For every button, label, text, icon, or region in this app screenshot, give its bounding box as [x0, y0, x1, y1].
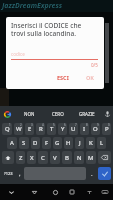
button[interactable]: N	[74, 151, 84, 164]
button[interactable]: OK	[83, 72, 98, 83]
button[interactable]: Recent apps	[65, 184, 79, 200]
button[interactable]: R	[36, 123, 45, 135]
staticText: F	[45, 139, 49, 147]
button[interactable]: Home	[48, 184, 62, 200]
button[interactable]: V	[50, 151, 60, 164]
staticText: V	[53, 154, 57, 162]
button[interactable]: Enter	[98, 167, 111, 180]
staticText: O	[93, 125, 98, 133]
button[interactable]: Comma	[17, 167, 22, 180]
button[interactable]: B	[62, 151, 72, 164]
staticText: I	[83, 125, 86, 133]
button[interactable]: Hide keyboard	[4, 184, 18, 200]
staticText: GRAZIE	[79, 111, 95, 117]
button[interactable]: D	[31, 137, 40, 149]
button[interactable]: Y	[58, 123, 67, 135]
staticText: 6	[64, 123, 66, 127]
button[interactable]: P	[102, 123, 111, 135]
staticText: Inserisci il CODICE che trovi sulla loca…	[11, 21, 82, 38]
button[interactable]: W	[14, 123, 23, 135]
staticText: ESCI	[57, 74, 69, 81]
button[interactable]: Z	[16, 151, 25, 164]
button[interactable]: L	[97, 137, 106, 149]
staticText: 3	[31, 123, 33, 127]
button[interactable]: Google	[0, 106, 15, 122]
staticText: L	[100, 139, 104, 147]
staticText: 4	[42, 123, 44, 127]
button[interactable]: CERO	[43, 106, 72, 122]
staticText: CERO	[52, 111, 64, 117]
staticText: R	[39, 125, 43, 133]
staticText: E	[28, 125, 32, 133]
staticText: G	[55, 139, 60, 147]
button[interactable]: U	[69, 123, 78, 135]
staticText: 7	[75, 123, 77, 127]
staticText: Y	[61, 125, 65, 133]
button[interactable]: Voice input	[101, 106, 113, 122]
staticText: K	[89, 139, 93, 147]
staticText: B	[65, 154, 69, 162]
button[interactable]: ESCI	[54, 72, 72, 83]
staticText: J	[79, 139, 81, 147]
button[interactable]: E	[25, 123, 34, 135]
button[interactable]: NON	[15, 106, 43, 122]
button[interactable]: Back	[27, 184, 41, 200]
staticText: ,	[19, 170, 21, 178]
button[interactable]: Backspace	[98, 151, 111, 164]
button[interactable]: J	[75, 137, 84, 149]
staticText: U	[71, 125, 76, 133]
staticText: C	[41, 154, 45, 162]
staticText: 9	[97, 123, 99, 127]
staticText: JazzDreamExpress	[2, 1, 63, 11]
button[interactable]: GRAZIE	[72, 106, 101, 122]
staticText: 1	[9, 123, 11, 127]
staticText: 8	[86, 123, 88, 127]
staticText: codice	[11, 51, 25, 57]
button[interactable]: C	[38, 151, 48, 164]
staticText: 0/5	[91, 62, 98, 68]
button[interactable]: K	[86, 137, 95, 149]
button[interactable]: Symbols	[2, 167, 15, 180]
button[interactable]: Period	[88, 167, 96, 180]
staticText: NON	[24, 111, 35, 117]
button[interactable]: H	[64, 137, 73, 149]
staticText: D	[33, 139, 38, 147]
staticText: W	[16, 125, 22, 133]
staticText: 2	[20, 123, 22, 127]
button[interactable]: F	[42, 137, 51, 149]
button[interactable]: Q	[2, 123, 12, 135]
staticText: N	[77, 154, 82, 162]
button[interactable]: O	[91, 123, 100, 135]
button[interactable]: X	[27, 151, 36, 164]
staticText: 5	[53, 123, 55, 127]
staticText: 0	[108, 123, 110, 127]
button[interactable]: Shift	[2, 151, 14, 164]
staticText: ?123	[4, 171, 13, 176]
staticText: X	[30, 154, 34, 162]
button[interactable]: T	[47, 123, 56, 135]
button[interactable]: M	[86, 151, 96, 164]
staticText: H	[66, 139, 71, 147]
staticText: Z	[19, 154, 23, 162]
staticText: A	[10, 139, 14, 147]
staticText: P	[105, 125, 109, 133]
button[interactable]: Switch input method	[99, 184, 110, 200]
button[interactable]: I	[80, 123, 89, 135]
staticText: OK	[86, 74, 95, 81]
button[interactable]: A	[7, 137, 17, 149]
staticText: .	[91, 170, 93, 178]
staticText: M	[88, 154, 94, 162]
button[interactable]: Change keyboard	[84, 184, 95, 200]
staticText: Q	[5, 125, 10, 133]
staticText: T	[50, 125, 54, 133]
button[interactable]: G	[53, 137, 62, 149]
staticText: S	[22, 139, 26, 147]
button[interactable]: S	[19, 137, 29, 149]
